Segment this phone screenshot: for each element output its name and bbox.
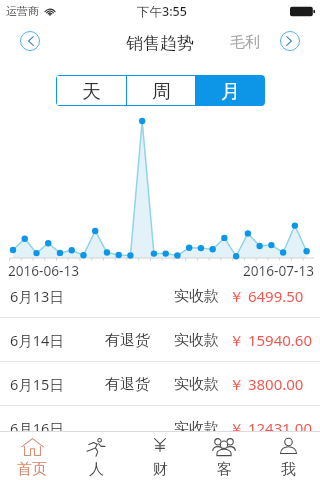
button[interactable]: Back: [20, 31, 40, 51]
button[interactable]: 6月13日: [0, 274, 320, 318]
button[interactable]: 6月15日: [0, 362, 320, 406]
staticText: 实收款: [174, 375, 219, 394]
staticText: 6月15日: [10, 374, 64, 394]
staticText: 周: [152, 80, 171, 104]
staticText: 实收款: [174, 419, 219, 438]
staticText: ￥ 3800.00: [229, 374, 304, 394]
staticText: 月: [221, 80, 240, 104]
button[interactable]: Next: [280, 31, 300, 51]
staticText: ￥ 15940.60: [229, 330, 312, 350]
button[interactable]: 人: [64, 432, 128, 480]
button[interactable]: 月: [196, 76, 264, 105]
button[interactable]: 财: [128, 432, 192, 480]
staticText: 有退货: [105, 331, 150, 350]
staticText: 2016-06-13: [8, 261, 79, 280]
staticText: 有退货: [105, 375, 150, 394]
staticText: 财: [153, 460, 168, 479]
button[interactable]: 6月16日: [0, 406, 320, 450]
button[interactable]: 我: [256, 432, 320, 480]
staticText: 6月16日: [10, 418, 64, 438]
staticText: 2016-07-13: [243, 261, 314, 280]
button[interactable]: 天: [57, 76, 126, 105]
staticText: 天: [82, 80, 101, 104]
staticText: ￥ 12431.00: [229, 418, 312, 438]
staticText: 毛利: [230, 33, 260, 52]
button[interactable]: 周: [127, 76, 195, 105]
staticText: 实收款: [174, 287, 219, 306]
staticText: 6月14日: [10, 330, 64, 350]
staticText: 首页: [17, 460, 47, 479]
staticText: ￥ 6499.50: [229, 286, 304, 306]
staticText: 运营商: [6, 4, 39, 18]
staticText: 6月13日: [10, 286, 64, 306]
staticText: 我: [281, 460, 296, 479]
staticText: 销售趋势: [126, 33, 194, 54]
staticText: 实收款: [174, 331, 219, 350]
button[interactable]: 客: [192, 432, 256, 480]
staticText: 下午3:55: [137, 3, 187, 20]
button[interactable]: 6月14日: [0, 318, 320, 362]
button[interactable]: 首页: [0, 432, 64, 480]
staticText: 人: [89, 460, 104, 479]
staticText: 客: [217, 460, 232, 479]
